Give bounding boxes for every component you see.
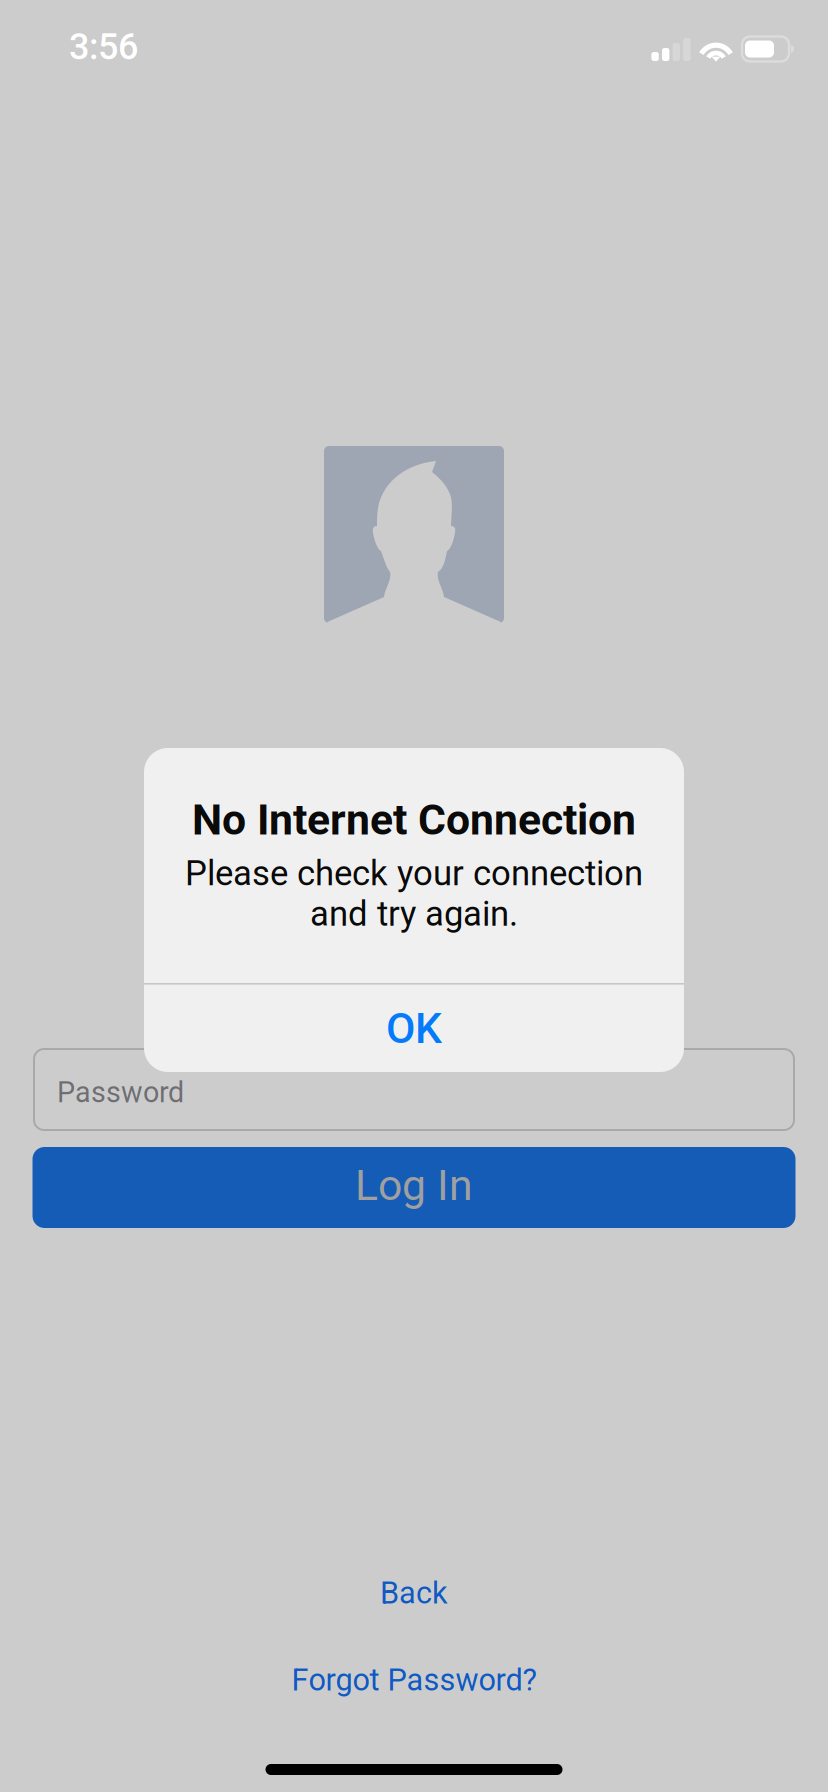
staticText: Please check your connection	[185, 853, 643, 894]
staticText: Password	[57, 1076, 184, 1109]
staticText: Back	[380, 1575, 448, 1611]
staticText: Log In	[355, 1160, 473, 1210]
button[interactable]: Forgot Password?	[244, 1652, 584, 1708]
button[interactable]: Back	[294, 1565, 534, 1621]
button[interactable]: Password	[34, 1049, 794, 1130]
staticText: and try again.	[310, 894, 518, 934]
button[interactable]: Log In	[32, 1147, 795, 1228]
staticText: Forgot Password?	[291, 1662, 536, 1698]
button[interactable]: OK	[144, 985, 684, 1072]
staticText: OK	[386, 1003, 442, 1053]
staticText: 3:56	[69, 26, 138, 68]
staticText: No Internet Connection	[192, 795, 636, 845]
